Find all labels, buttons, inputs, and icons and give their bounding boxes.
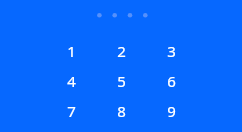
button[interactable]: 3 xyxy=(146,36,196,66)
staticText: 7 xyxy=(67,101,76,121)
button[interactable]: 5 xyxy=(96,66,146,96)
button[interactable]: 6 xyxy=(146,66,196,96)
staticText: 3 xyxy=(167,41,176,61)
other: Passcode progress xyxy=(96,11,149,19)
button[interactable]: 9 xyxy=(146,96,196,126)
button[interactable]: 2 xyxy=(96,36,146,66)
staticText: 5 xyxy=(117,71,126,91)
button[interactable]: 1 xyxy=(46,36,96,66)
staticText: 1 xyxy=(67,41,76,61)
staticText: 8 xyxy=(117,101,126,121)
button[interactable]: 7 xyxy=(46,96,96,126)
button[interactable]: 8 xyxy=(96,96,146,126)
staticText: 4 xyxy=(67,71,76,91)
staticText: 9 xyxy=(167,101,176,121)
staticText: 6 xyxy=(167,71,176,91)
staticText: 2 xyxy=(117,41,126,61)
button[interactable]: 4 xyxy=(46,66,96,96)
